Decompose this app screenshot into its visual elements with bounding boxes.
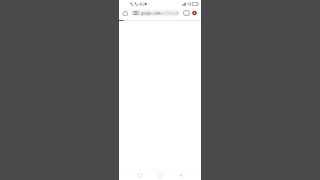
button[interactable]: Home (150, 170, 170, 180)
button[interactable]: Back (170, 170, 190, 180)
staticText: google.com (140, 10, 160, 16)
button[interactable]: Home (119, 8, 131, 18)
button[interactable]: Account (190, 8, 198, 18)
staticText: /search?q=ab (155, 10, 178, 16)
staticText: 94 (187, 1, 191, 7)
button[interactable]: Tabs (182, 8, 190, 18)
staticText: ·· (148, 1, 150, 7)
staticText: 4G (139, 1, 144, 7)
button[interactable]: Recent apps (130, 170, 150, 180)
button[interactable]: google.com (131, 9, 179, 16)
